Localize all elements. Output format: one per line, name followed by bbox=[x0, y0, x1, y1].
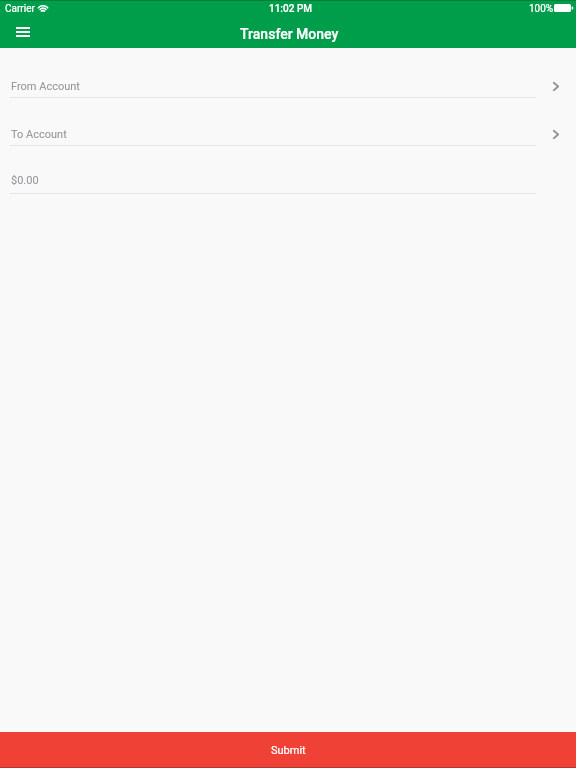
staticText: From Account bbox=[11, 80, 80, 93]
button[interactable]: Select To Account bbox=[548, 126, 564, 142]
button[interactable]: Select From Account bbox=[548, 78, 564, 94]
button[interactable]: $0.00 bbox=[0, 169, 576, 194]
staticText: Submit bbox=[271, 744, 306, 757]
staticText: 11:02 PM bbox=[269, 3, 313, 15]
staticText: Carrier bbox=[5, 3, 35, 15]
button[interactable]: To Account bbox=[0, 121, 576, 146]
staticText: $0.00 bbox=[11, 174, 39, 187]
staticText: To Account bbox=[11, 128, 67, 141]
button[interactable]: Open navigation menu bbox=[6, 20, 40, 48]
button[interactable]: From Account bbox=[0, 73, 576, 98]
staticText: Transfer Money bbox=[240, 26, 339, 42]
staticText: 100% bbox=[529, 3, 554, 15]
button[interactable]: Submit bbox=[0, 732, 576, 768]
